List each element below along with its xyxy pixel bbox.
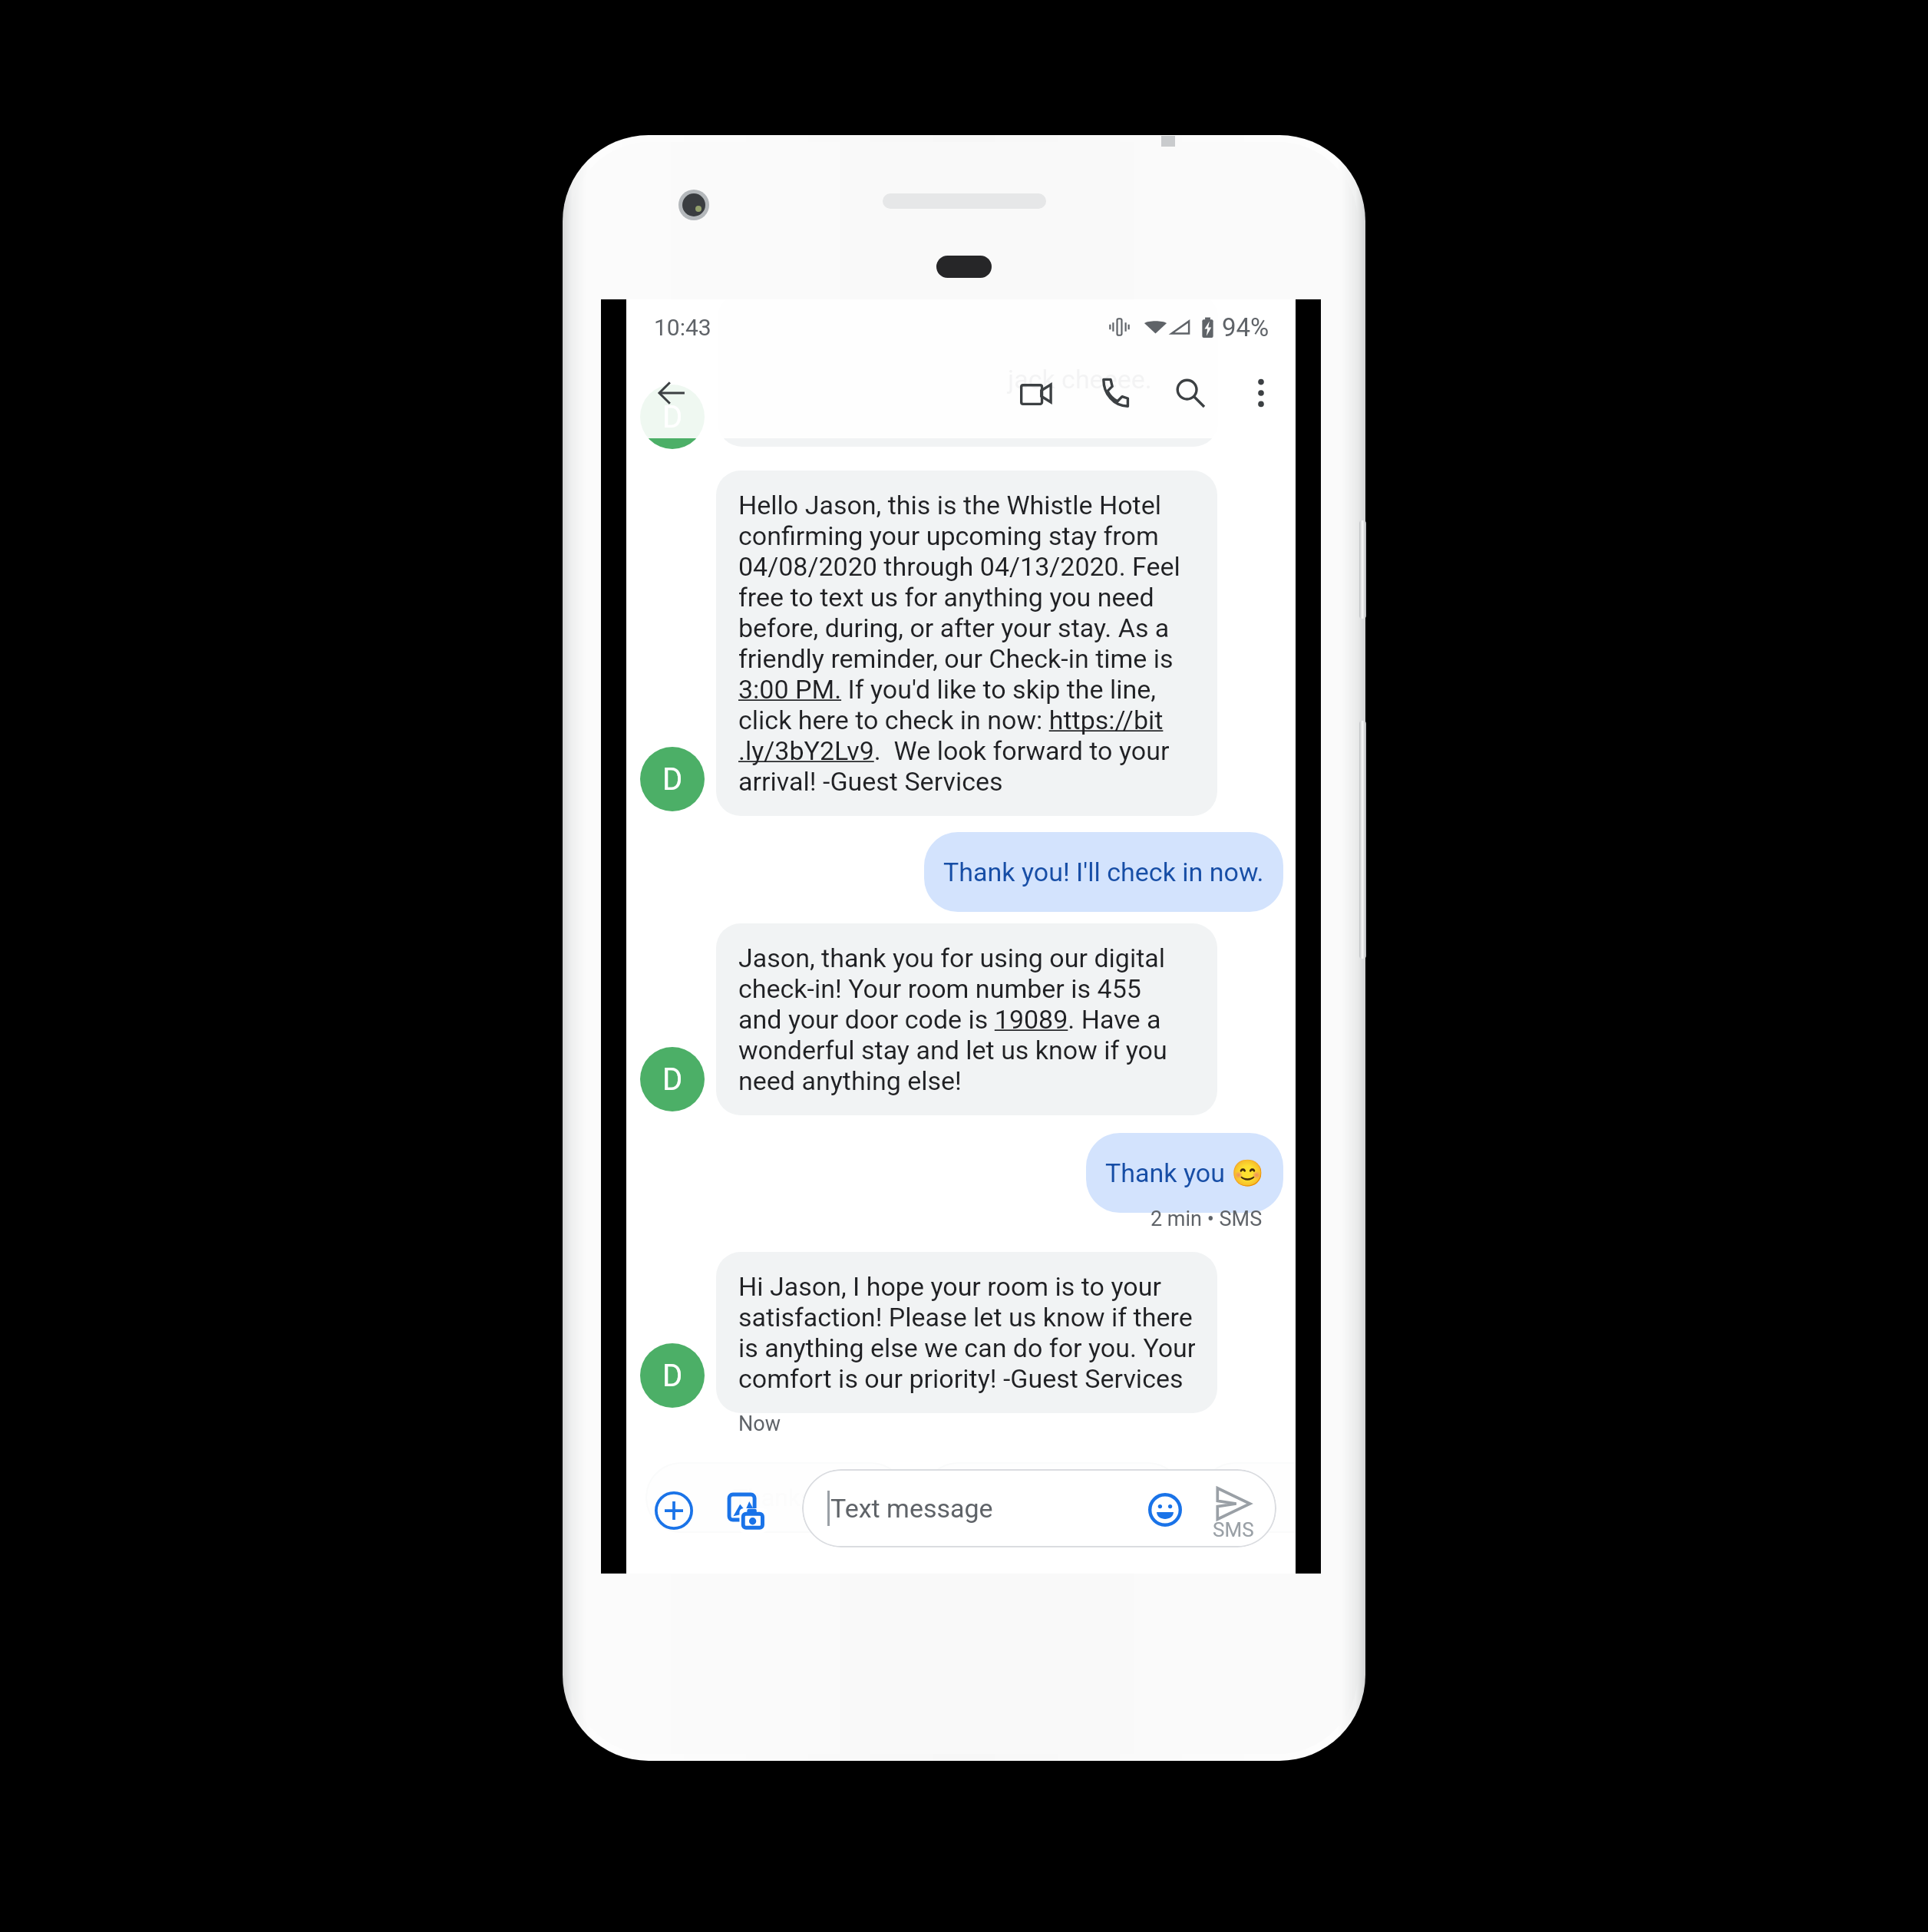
staticText: D <box>662 399 683 435</box>
button[interactable]: Take photo <box>716 1481 774 1540</box>
staticText: Now <box>738 1412 781 1436</box>
staticText: 94% <box>1222 312 1269 342</box>
button[interactable]: Contact avatar <box>640 747 705 811</box>
button[interactable]: Contact avatar <box>640 385 705 449</box>
button[interactable]: Contact avatar <box>640 1047 705 1111</box>
button[interactable]: Thank you! I'll check in now. <box>924 832 1283 912</box>
staticText: 2 min • SMS <box>1151 1207 1263 1231</box>
button[interactable]: Jason, thank you for using our digital c… <box>716 923 1217 1115</box>
staticText: D <box>662 1062 683 1098</box>
button[interactable]: Search <box>1161 364 1220 422</box>
button[interactable]: Add <box>645 1481 703 1540</box>
button[interactable]: Thank you <box>923 1462 1184 1533</box>
button[interactable]: Emoji <box>1136 1481 1194 1539</box>
button[interactable]: Hi Jason, I hope your room is to your sa… <box>716 1252 1217 1413</box>
button[interactable]: Text message <box>802 1469 1276 1547</box>
staticText: Text message <box>830 1493 993 1524</box>
button[interactable]: Thank you 😊 <box>1086 1133 1283 1213</box>
staticText: Thanks! <box>733 1483 820 1512</box>
button[interactable]: Contact avatar <box>640 1343 705 1408</box>
button[interactable]: Hello Jason, this is the Whistle Hotel c… <box>716 471 1217 816</box>
staticText: 10:43 <box>654 314 711 341</box>
staticText: Jason, thank you for using our digital c… <box>738 943 1167 1096</box>
staticText: Hello Jason, this is the Whistle Hotel c… <box>738 490 1180 797</box>
button[interactable]: More options <box>1232 364 1290 422</box>
staticText: D <box>662 1358 683 1394</box>
staticText: SMS <box>1213 1518 1254 1541</box>
staticText: Thank you! I'll check in now. <box>943 857 1264 887</box>
staticText: Hi Jason, I hope your room is to your sa… <box>738 1271 1195 1394</box>
button[interactable]: Send SMS <box>1203 1481 1262 1540</box>
staticText: Thank you 😊 <box>1105 1158 1264 1188</box>
button[interactable]: Thanks! <box>645 1462 906 1533</box>
staticText: jack cheeee. <box>1008 364 1152 395</box>
button[interactable]: Ok <box>1200 1462 1296 1533</box>
staticText: D <box>662 761 683 798</box>
button[interactable]: Video call <box>1007 364 1065 422</box>
button[interactable]: Back <box>642 364 701 422</box>
button[interactable]: Call <box>1084 364 1143 422</box>
